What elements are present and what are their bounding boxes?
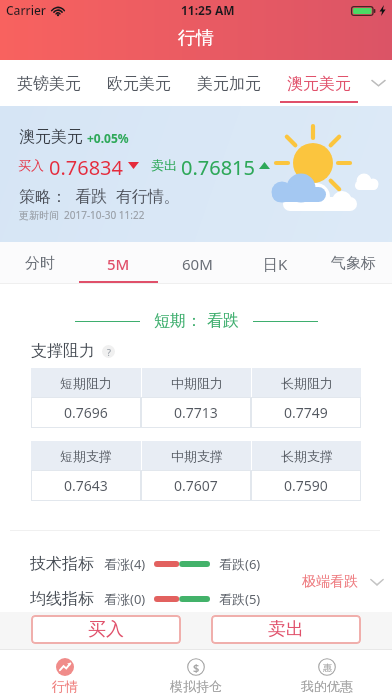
staticText: Carrier — [6, 2, 46, 18]
staticText: 看涨(4) — [104, 555, 146, 573]
button[interactable]: 行情 — [0, 649, 130, 696]
staticText: 看跌(5) — [219, 590, 261, 608]
staticText: 看跌 — [207, 311, 239, 331]
staticText: 澳元美元 — [19, 127, 83, 147]
staticText: 行情 — [52, 678, 78, 694]
staticText: 行情 — [178, 27, 214, 50]
button[interactable]: $ — [130, 649, 261, 696]
button[interactable]: 分时 — [0, 242, 79, 283]
staticText: 技术指标 — [30, 554, 94, 574]
staticText: 卖出 — [151, 157, 177, 173]
staticText: 0.7696 — [64, 403, 108, 422]
staticText: 分时 — [25, 254, 55, 273]
staticText: 中期支撑 — [171, 448, 223, 464]
staticText: 模拟持仓 — [170, 678, 222, 694]
staticText: $ — [193, 660, 200, 675]
button[interactable]: 日K — [236, 242, 314, 283]
staticText: 0.7643 — [64, 476, 108, 495]
staticText: 短期支撑 — [60, 448, 112, 464]
staticText: 0.76834 — [49, 154, 123, 176]
button[interactable]: 英镑美元 — [4, 60, 94, 106]
staticText: 2017-10-30 11:22 — [64, 208, 145, 222]
staticText: 长期支撑 — [281, 448, 333, 464]
staticText: 短期： — [154, 311, 202, 331]
staticText: 0.7607 — [174, 476, 218, 495]
staticText: 中期阻力 — [171, 375, 223, 391]
staticText: 支撑阻力 — [31, 341, 95, 361]
staticText: +0.05% — [87, 130, 129, 146]
staticText: 更新时间 — [19, 209, 59, 222]
button[interactable]: More currency pairs — [364, 60, 392, 106]
staticText: 极端看跌 — [302, 573, 358, 591]
staticText: 看跌(6) — [219, 555, 261, 573]
button[interactable]: 惠 — [261, 649, 392, 696]
staticText: 我的优惠 — [301, 678, 353, 694]
button[interactable]: 气象标 — [314, 242, 392, 283]
staticText: 短期阻力 — [60, 375, 112, 391]
button[interactable]: 欧元美元 — [94, 60, 184, 106]
staticText: 策略： 看跌 有行情。 — [19, 185, 180, 207]
staticText: 美元加元 — [197, 74, 261, 94]
button[interactable]: 5M — [79, 242, 158, 283]
button[interactable]: 澳元美元 — [274, 60, 364, 106]
staticText: ? — [107, 346, 111, 358]
staticText: 卖出 — [268, 618, 304, 641]
staticText: 长期阻力 — [281, 375, 333, 391]
staticText: 气象标 — [331, 254, 376, 273]
staticText: 0.7590 — [284, 476, 328, 495]
staticText: 看涨(0) — [104, 590, 146, 608]
staticText: 0.76815 — [181, 154, 255, 176]
staticText: 0.7749 — [284, 403, 328, 422]
button[interactable]: 卖出 — [211, 615, 361, 644]
staticText: 买入 — [18, 157, 44, 173]
staticText: 英镑美元 — [17, 74, 81, 94]
staticText: 0.7713 — [174, 403, 218, 422]
button[interactable]: 60M — [158, 242, 236, 283]
staticText: 11:25 AM — [181, 2, 235, 18]
staticText: 欧元美元 — [107, 74, 171, 94]
staticText: 60M — [182, 254, 213, 274]
button[interactable]: 买入 — [31, 615, 181, 644]
staticText: 澳元美元 — [287, 74, 351, 94]
staticText: 买入 — [88, 618, 124, 641]
staticText: 惠 — [323, 662, 332, 673]
staticText: 日K — [263, 254, 288, 274]
button[interactable]: 美元加元 — [184, 60, 274, 106]
staticText: 5M — [107, 254, 130, 274]
staticText: 均线指标 — [30, 589, 94, 609]
